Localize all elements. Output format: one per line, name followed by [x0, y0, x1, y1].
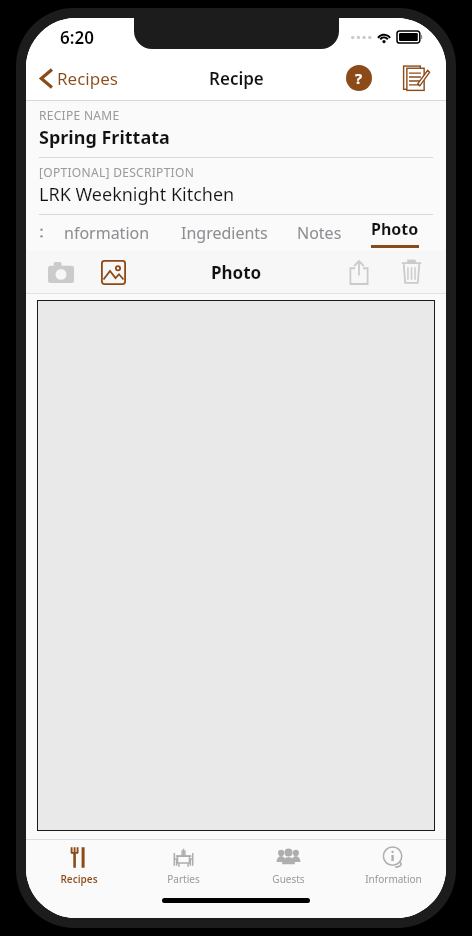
staticText: RECIPE NAME: [39, 107, 120, 123]
button[interactable]: Help: [346, 65, 372, 91]
button[interactable]: Ingredients: [167, 215, 282, 251]
staticText: LRK Weeknight Kitchen: [39, 182, 235, 207]
button[interactable]: Photo: [357, 215, 432, 251]
staticText: 6:20: [60, 26, 94, 49]
button[interactable]: Take photo: [42, 253, 80, 291]
staticText: Recipes: [57, 67, 118, 90]
button[interactable]: Share: [340, 253, 378, 291]
staticText: Information: [365, 872, 422, 886]
button[interactable]: nformation: [46, 215, 167, 251]
staticText: Recipe: [209, 67, 264, 90]
button[interactable]: [OPTIONAL] DESCRIPTION: [39, 164, 433, 215]
button[interactable]: Delete: [392, 253, 430, 291]
button[interactable]: Edit: [400, 63, 430, 93]
staticText: ?: [355, 68, 363, 88]
button[interactable]: Guests: [236, 840, 341, 892]
staticText: Recipes: [60, 872, 98, 886]
staticText: Spring Frittata: [39, 125, 170, 150]
button[interactable]: RECIPE NAME: [39, 107, 433, 158]
button[interactable]: Information: [341, 840, 446, 892]
staticText: Notes: [297, 222, 342, 244]
button[interactable]: Notes: [282, 215, 357, 251]
staticText: Photo: [371, 218, 419, 240]
button[interactable]: Parties: [131, 840, 236, 892]
staticText: [OPTIONAL] DESCRIPTION: [39, 164, 195, 180]
staticText: Photo: [211, 261, 262, 284]
button[interactable]: Recipes: [40, 67, 118, 90]
staticText: Guests: [272, 872, 305, 886]
button[interactable]: Recipes: [26, 840, 131, 892]
button[interactable]: Choose photo: [94, 253, 132, 291]
staticText: Ingredients: [181, 222, 268, 244]
staticText: Parties: [167, 872, 200, 886]
staticText: nformation: [64, 222, 150, 244]
